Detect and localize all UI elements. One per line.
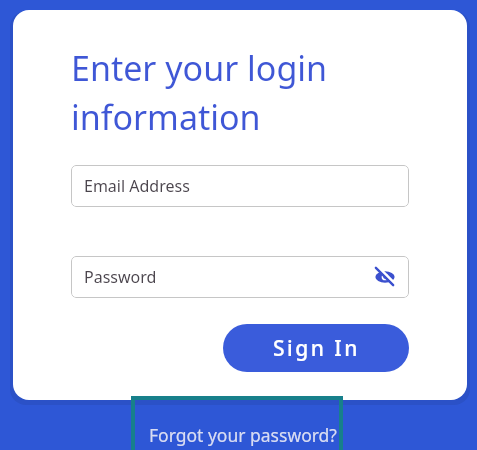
staticText: Enter your login information: [71, 45, 328, 140]
button[interactable]: Sign In: [223, 324, 409, 372]
staticText: Email Address: [84, 175, 190, 197]
button[interactable]: Password: [71, 256, 409, 298]
staticText: Forgot your password?: [149, 423, 337, 447]
button[interactable]: [373, 265, 397, 289]
staticText: Sign In: [273, 334, 360, 363]
staticText: Password: [84, 266, 157, 288]
button[interactable]: Forgot your password?: [123, 420, 363, 450]
button[interactable]: Email Address: [71, 165, 409, 207]
